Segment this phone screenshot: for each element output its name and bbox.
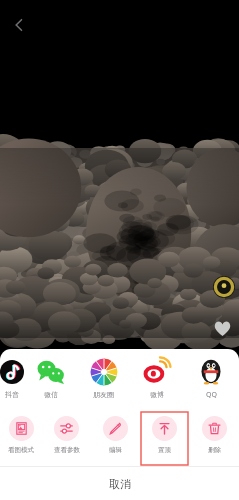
staticText: 看图模式 [8, 446, 34, 454]
button[interactable]: 看图模式 [0, 412, 42, 465]
button[interactable]: Back [6, 12, 32, 38]
button[interactable]: 置顶 [140, 412, 189, 465]
button[interactable]: 查看参数 [42, 412, 91, 465]
button[interactable]: Lens [213, 276, 235, 298]
staticText: 查看参数 [54, 446, 80, 454]
staticText: 微信 [44, 390, 58, 399]
staticText: 取消 [109, 477, 131, 491]
button[interactable]: 编辑 [91, 412, 140, 465]
button[interactable]: 微信 [24, 358, 77, 408]
staticText: 删除 [208, 446, 221, 454]
button[interactable]: 微博 [130, 358, 183, 408]
button[interactable]: 朋友圈 [77, 358, 130, 408]
button[interactable]: 抖音 [0, 358, 24, 408]
staticText: 抖音 [5, 390, 19, 399]
button[interactable]: QQ [183, 358, 239, 408]
staticText: 置顶 [158, 446, 171, 454]
staticText: 编辑 [109, 446, 122, 454]
staticText: QQ [206, 390, 217, 400]
button[interactable]: 取消 [0, 467, 239, 500]
staticText: 朋友圈 [93, 390, 114, 399]
button[interactable]: Like [214, 320, 231, 337]
button[interactable]: 删除 [189, 412, 239, 465]
staticText: 微博 [150, 390, 164, 399]
